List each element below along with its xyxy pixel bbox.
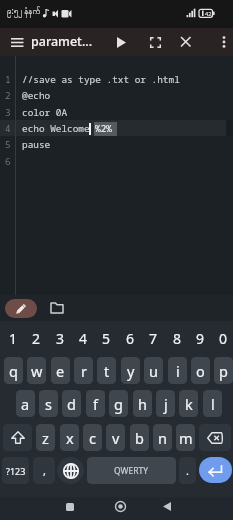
button[interactable] <box>57 457 84 484</box>
button[interactable]: b <box>130 424 149 451</box>
button[interactable]: s <box>39 390 58 417</box>
staticText: 5 <box>102 329 111 348</box>
button[interactable]: y <box>121 357 140 384</box>
button[interactable]: 7 <box>0 321 19 348</box>
staticText: , <box>43 463 46 478</box>
button[interactable]: t <box>97 357 116 384</box>
staticText: b <box>135 428 144 448</box>
button[interactable]: ?123 <box>2 457 29 484</box>
button[interactable]: v <box>106 424 125 451</box>
button[interactable] <box>0 28 22 50</box>
staticText: echo Welcome <box>22 122 90 135</box>
staticText: q <box>9 361 18 381</box>
staticText: x <box>66 428 74 448</box>
staticText: j <box>164 394 168 414</box>
button[interactable] <box>3 424 32 451</box>
staticText: 2 <box>32 329 41 348</box>
button[interactable]: h <box>133 390 152 417</box>
button[interactable]: j <box>156 390 175 417</box>
button[interactable]: 1 <box>0 321 19 348</box>
staticText: t <box>104 361 110 381</box>
staticText: f <box>93 394 98 414</box>
staticText: @echo <box>22 89 51 102</box>
staticText: h <box>138 394 147 414</box>
staticText: 4 <box>79 329 88 348</box>
button[interactable]: i <box>168 357 187 384</box>
button[interactable]: 0 <box>0 321 19 348</box>
staticText: 2 <box>5 89 11 102</box>
staticText: y <box>127 361 135 381</box>
staticText: w <box>31 361 43 381</box>
button[interactable] <box>0 28 22 50</box>
button[interactable]: l <box>203 390 222 417</box>
button[interactable]: d <box>62 390 81 417</box>
staticText: ၉:၅၂ နံနက် <box>7 5 41 17</box>
staticText: v <box>112 428 120 448</box>
button[interactable]: paramet... <box>0 28 62 45</box>
staticText: o <box>196 361 205 381</box>
staticText: 42 <box>205 10 212 17</box>
button[interactable]: x <box>60 424 79 451</box>
button[interactable]: r <box>74 357 93 384</box>
button[interactable]: m <box>176 424 195 451</box>
staticText: 1 <box>5 73 11 86</box>
button[interactable] <box>199 424 231 451</box>
button[interactable]: a <box>16 390 35 417</box>
staticText: g <box>114 394 123 414</box>
staticText: 9 <box>196 329 205 348</box>
staticText: color 0A <box>22 106 68 119</box>
button[interactable]: 9 <box>0 321 19 348</box>
staticText: k <box>185 394 193 414</box>
staticText: d <box>67 394 76 414</box>
staticText: u <box>149 361 158 381</box>
button[interactable] <box>5 299 37 318</box>
staticText: a <box>21 394 30 414</box>
button[interactable]: . <box>179 457 196 484</box>
button[interactable]: 5 <box>0 321 19 348</box>
button[interactable]: g <box>109 390 128 417</box>
button[interactable] <box>0 28 22 50</box>
staticText: 3 <box>56 329 65 348</box>
staticText: 4 <box>5 122 11 135</box>
staticText: s <box>45 394 52 414</box>
button[interactable] <box>199 457 232 483</box>
staticText: ?123 <box>6 465 26 477</box>
button[interactable]: f <box>86 390 105 417</box>
button[interactable]: QWERTY <box>87 457 176 484</box>
button[interactable]: n <box>153 424 172 451</box>
staticText: r <box>81 361 87 381</box>
staticText: 3 <box>5 106 11 119</box>
button[interactable]: , <box>33 457 55 484</box>
staticText: z <box>42 428 49 448</box>
button[interactable]: k <box>179 390 198 417</box>
button[interactable]: z <box>36 424 55 451</box>
staticText: 8 <box>173 329 182 348</box>
staticText: . <box>186 463 189 478</box>
staticText: c <box>89 428 96 448</box>
staticText: %2% <box>95 122 112 135</box>
button[interactable]: w <box>27 357 46 384</box>
button[interactable] <box>0 295 18 317</box>
button[interactable]: q <box>4 357 23 384</box>
button[interactable]: u <box>144 357 163 384</box>
staticText: 6 <box>126 329 135 348</box>
button[interactable]: 6 <box>0 321 19 348</box>
staticText: pause <box>22 138 51 151</box>
staticText: //save as type .txt or .html <box>22 73 180 86</box>
button[interactable]: o <box>191 357 210 384</box>
button[interactable]: p <box>214 357 233 384</box>
button[interactable] <box>0 28 22 50</box>
button[interactable] <box>0 28 22 50</box>
staticText: 1 <box>9 329 18 348</box>
button[interactable]: c <box>83 424 102 451</box>
staticText: p <box>219 361 228 381</box>
button[interactable]: 2 <box>0 321 19 348</box>
button[interactable]: 4 <box>0 321 19 348</box>
button[interactable]: e <box>51 357 70 384</box>
button[interactable]: 8 <box>0 321 19 348</box>
staticText: 5 <box>5 138 11 151</box>
button[interactable]: 3 <box>0 321 19 348</box>
